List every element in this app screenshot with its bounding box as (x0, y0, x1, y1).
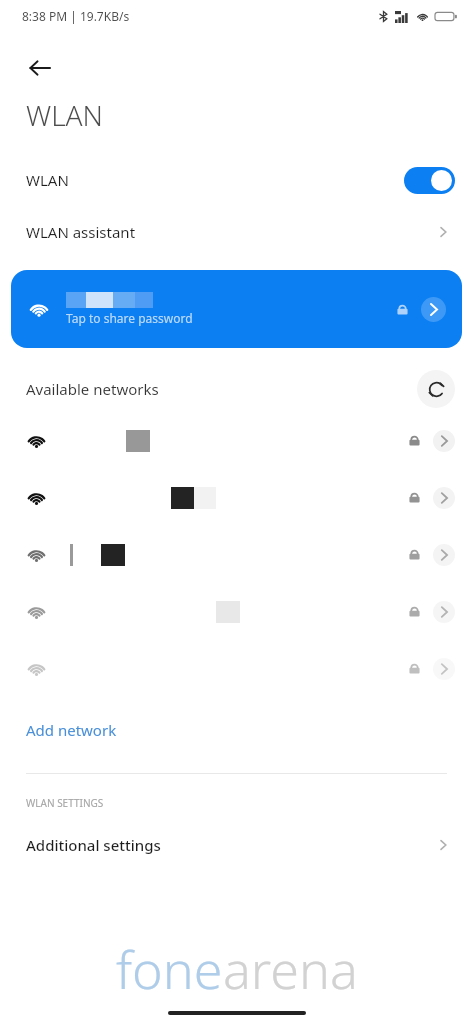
button[interactable] (0, 469, 473, 526)
staticText: fone (116, 933, 223, 1004)
button[interactable]: Tap to share password (11, 270, 462, 348)
staticText: Add network (26, 720, 117, 740)
button[interactable]: Add network (0, 713, 473, 747)
button[interactable]: WLAN assistant (0, 208, 473, 256)
button[interactable]: Additional settings (0, 826, 473, 864)
button[interactable]: Back (12, 40, 68, 96)
button[interactable]: Refresh (417, 370, 455, 408)
button[interactable] (0, 412, 473, 469)
staticText: WLAN (26, 96, 104, 134)
staticText: WLAN (26, 170, 69, 190)
button[interactable] (0, 526, 473, 583)
staticText: 8:38 PM | 19.7KB/s (22, 8, 130, 24)
staticText: Available networks (26, 379, 159, 399)
staticText: Tap to share password (66, 310, 193, 326)
button[interactable]: WLAN (0, 156, 473, 204)
button[interactable] (0, 640, 473, 697)
staticText: arena (223, 933, 358, 1004)
staticText: Additional settings (26, 835, 161, 855)
staticText: WLAN assistant (26, 222, 136, 242)
button[interactable] (0, 583, 473, 640)
staticText: WLAN SETTINGS (26, 796, 104, 810)
